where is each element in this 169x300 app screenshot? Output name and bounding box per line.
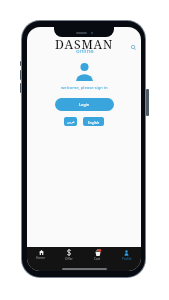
staticText: Login xyxy=(79,102,90,107)
staticText: Cart xyxy=(94,257,101,261)
staticText: DASMAN xyxy=(55,36,114,52)
button[interactable]: Profile xyxy=(112,247,141,263)
button[interactable]: Offer xyxy=(55,247,83,263)
button[interactable]: عربي xyxy=(64,117,77,126)
button[interactable]: Home xyxy=(27,247,55,263)
staticText: English xyxy=(88,120,100,124)
staticText: welcome, please sign in xyxy=(61,85,108,91)
staticText: Offer xyxy=(65,257,73,261)
button[interactable]: Search xyxy=(128,42,139,53)
staticText: online xyxy=(76,47,94,55)
button[interactable]: English xyxy=(83,117,104,126)
staticText: Home xyxy=(36,256,46,260)
button[interactable]: Cart xyxy=(83,247,112,263)
staticText: عربي xyxy=(67,120,75,124)
button[interactable]: Login xyxy=(55,98,114,111)
staticText: Profile xyxy=(122,257,132,261)
